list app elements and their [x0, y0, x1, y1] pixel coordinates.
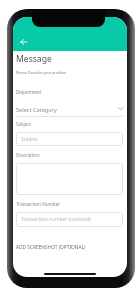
staticText: Transaction number (optional)	[21, 216, 91, 223]
button[interactable]: Select Category	[16, 106, 123, 113]
staticText: Subject	[16, 121, 32, 127]
staticText: Please Describe your problem	[16, 70, 67, 75]
staticText: Select Category	[16, 106, 118, 113]
staticText: Transaction Number	[16, 201, 61, 207]
button[interactable]: Back	[18, 36, 30, 48]
staticText: Department	[16, 89, 42, 95]
button[interactable]: ADD SCREENSHOT (OPTIONAL)	[16, 244, 86, 251]
button[interactable]	[16, 163, 123, 195]
button[interactable]: Subject	[16, 132, 123, 146]
button[interactable]: Transaction number (optional)	[16, 212, 123, 227]
staticText: Description	[16, 152, 40, 158]
staticText: Message	[16, 53, 52, 65]
staticText: Subject	[21, 136, 38, 143]
